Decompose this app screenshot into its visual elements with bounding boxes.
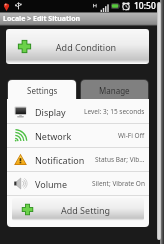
button[interactable]: Add Setting: [12, 198, 144, 221]
staticText: Add Setting: [34, 204, 137, 216]
staticText: Display: [35, 106, 66, 118]
staticText: Level: 3; 15 seconds: [84, 107, 145, 116]
staticText: Manage: [99, 85, 130, 96]
button[interactable]: Volume: [7, 172, 149, 195]
staticText: 10:50: [134, 0, 156, 12]
staticText: Network: [35, 130, 72, 142]
staticText: Silent; Vibrate On: [92, 179, 145, 188]
button[interactable]: Display: [7, 100, 149, 123]
staticText: Status Bar; Vib...: [95, 155, 145, 164]
staticText: Settings: [27, 85, 58, 96]
staticText: Locale > Edit Situation: [3, 14, 81, 24]
staticText: Wi-Fi Off: [118, 131, 145, 140]
button[interactable]: Network: [7, 124, 149, 147]
button[interactable]: Notification: [7, 148, 149, 171]
staticText: Volume: [35, 178, 68, 190]
button[interactable]: Settings: [8, 80, 76, 100]
button[interactable]: Manage: [81, 80, 148, 100]
button[interactable]: Add Condition: [6, 29, 149, 64]
staticText: Notification: [35, 154, 85, 166]
staticText: Add Condition: [32, 41, 140, 53]
